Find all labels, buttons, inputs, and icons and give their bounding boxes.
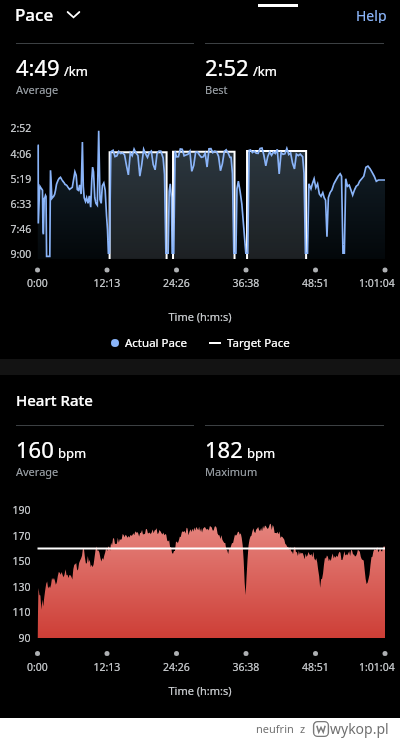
staticText: Time (h:m:s) bbox=[0, 309, 400, 324]
staticText: Average bbox=[16, 464, 59, 479]
staticText: bpm bbox=[58, 444, 87, 462]
staticText: Pace bbox=[15, 3, 54, 26]
staticText: Time (h:m:s) bbox=[0, 683, 400, 698]
staticText: Maximum bbox=[205, 464, 258, 479]
staticText: Heart Rate bbox=[16, 390, 93, 410]
button[interactable]: Pace bbox=[0, 3, 88, 26]
staticText: 160 bbox=[16, 434, 54, 464]
staticText: bpm bbox=[247, 444, 276, 462]
staticText: Actual Pace bbox=[125, 335, 187, 351]
staticText: z bbox=[300, 721, 306, 736]
other: Change metric bbox=[67, 11, 80, 19]
staticText: /km bbox=[253, 62, 277, 80]
button[interactable]: Help bbox=[340, 0, 400, 29]
staticText: 2:52 bbox=[205, 52, 249, 82]
staticText: 182 bbox=[205, 434, 243, 464]
staticText: /km bbox=[64, 62, 88, 80]
staticText: Best bbox=[205, 82, 228, 97]
staticText: Help bbox=[356, 6, 387, 23]
staticText: Average bbox=[16, 82, 59, 97]
staticText: Target Pace bbox=[227, 335, 290, 351]
staticText: wykop.pl bbox=[330, 719, 389, 738]
staticText: neufrin bbox=[256, 721, 294, 736]
staticText: 4:49 bbox=[16, 52, 60, 82]
